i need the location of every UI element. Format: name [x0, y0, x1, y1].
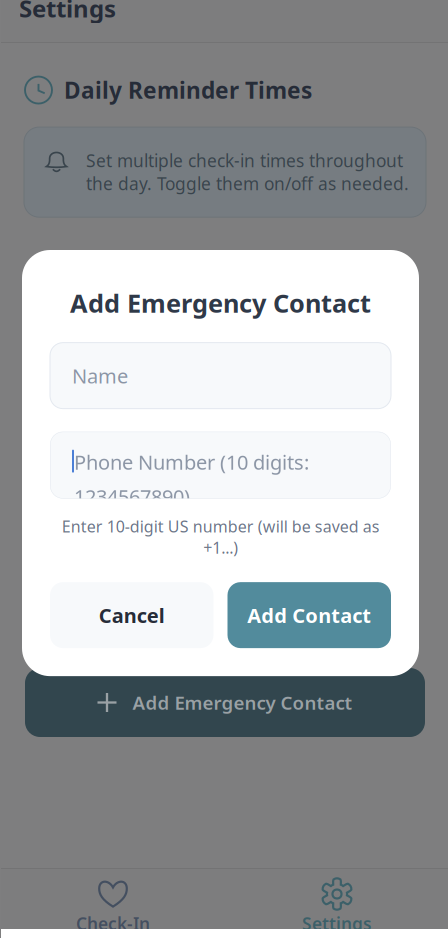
staticText: Phone Number (10 digits: 1234567890) [74, 449, 309, 510]
staticText: Add Emergency Contact [70, 286, 371, 320]
staticText: Daily Reminder Times [64, 75, 312, 105]
button[interactable]: Cancel [50, 582, 213, 648]
staticText: Settings [302, 912, 372, 935]
button[interactable]: Add Contact [227, 582, 391, 648]
staticText: Enter 10-digit US number (will be saved … [61, 516, 379, 558]
staticText: Check-In [76, 912, 150, 935]
staticText: Add Emergency Contact [132, 690, 352, 715]
button[interactable]: Check-In tab [1, 869, 225, 935]
staticText: Set multiple check-in times throughout t… [86, 149, 409, 195]
button[interactable]: Add Emergency Contact [25, 668, 425, 737]
button[interactable]: Settings tab [225, 869, 448, 935]
staticText: Name [72, 362, 128, 389]
staticText: Cancel [99, 602, 165, 628]
staticText: Add Contact [247, 602, 371, 628]
staticText: Settings [19, 0, 116, 24]
